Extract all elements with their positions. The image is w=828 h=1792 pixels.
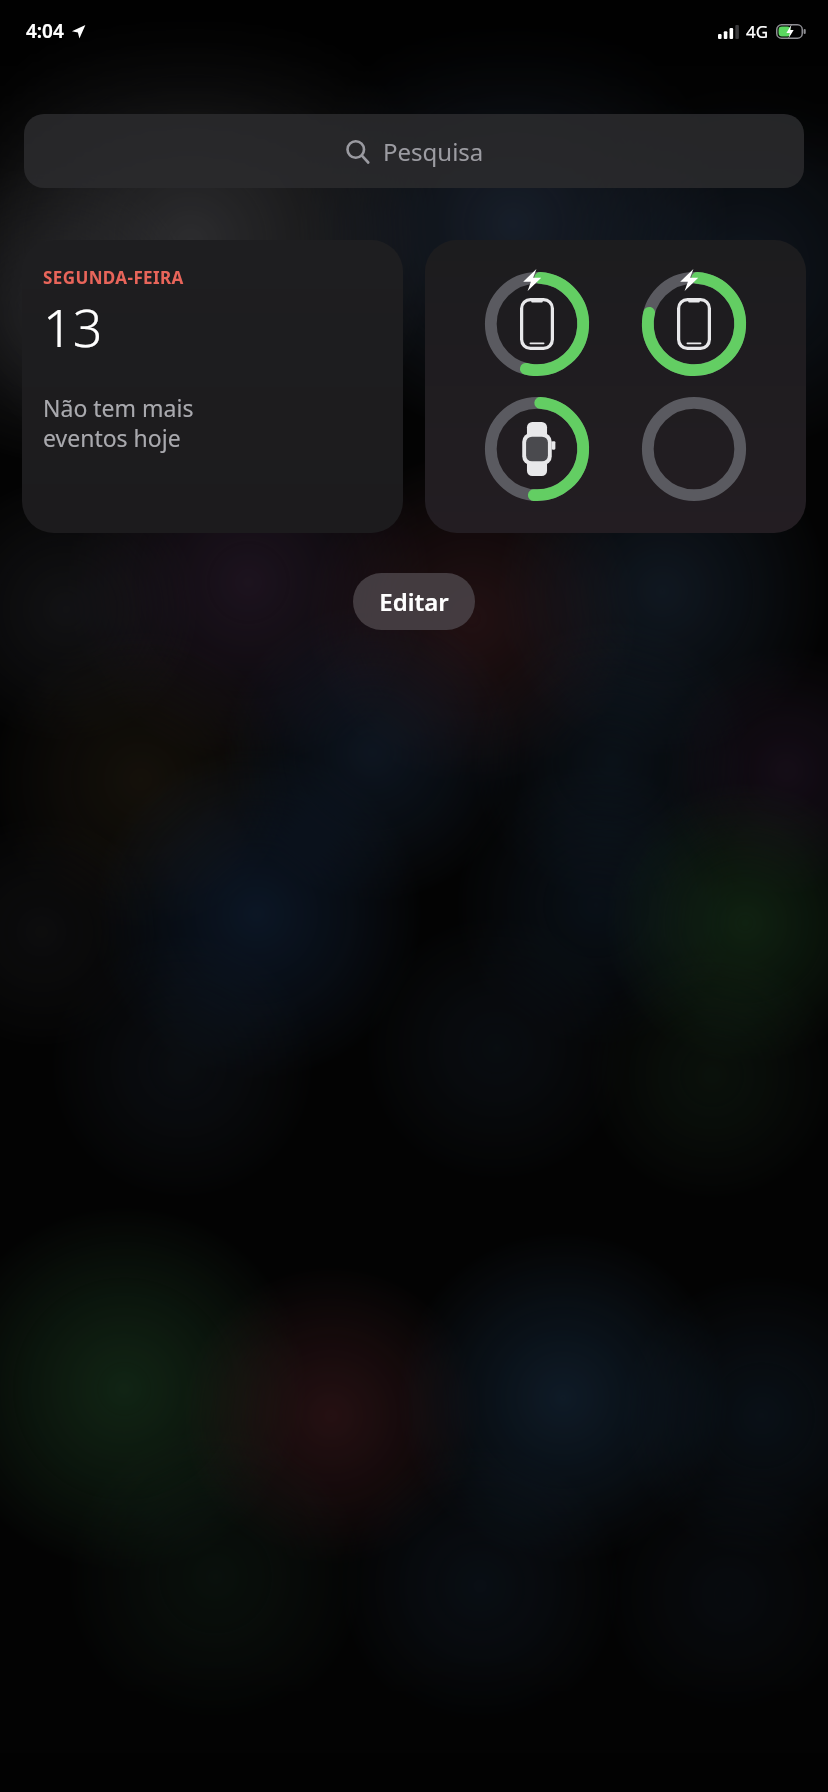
button[interactable]: Pesquisa xyxy=(24,114,804,188)
staticText: 4:04 xyxy=(26,18,64,44)
button[interactable]: iPhone battery 53 percent charging xyxy=(481,268,593,380)
button[interactable]: iPhone battery 53 percent charging xyxy=(425,240,806,533)
staticText: Não tem mais eventos hoje xyxy=(43,392,194,454)
staticText: Pesquisa xyxy=(383,135,484,168)
staticText: SEGUNDA-FEIRA xyxy=(43,266,184,289)
button[interactable]: No device connected xyxy=(638,393,750,505)
staticText: 4G xyxy=(746,20,769,43)
staticText: Editar xyxy=(379,585,449,618)
button[interactable]: SEGUNDA-FEIRA xyxy=(22,240,403,533)
staticText: 13 xyxy=(43,291,103,362)
button[interactable]: Editar xyxy=(353,573,475,630)
button[interactable]: iPhone battery 78 percent charging xyxy=(638,268,750,380)
button[interactable]: Apple Watch battery 50 percent xyxy=(481,393,593,505)
